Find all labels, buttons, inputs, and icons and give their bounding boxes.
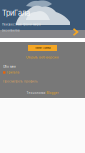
button[interactable]: Просмотреть профиль (3, 80, 38, 83)
button[interactable]: ТриГала (3, 71, 19, 74)
staticText: Обо мне (3, 65, 16, 68)
staticText: Технологии (26, 91, 45, 95)
button[interactable]: Следующая страница (72, 28, 79, 36)
staticText: Открыть веб-версию (26, 56, 59, 59)
staticText: Главная страница (34, 47, 50, 49)
staticText: Blogger (46, 91, 58, 95)
button[interactable]: Открыть веб-версию (26, 56, 59, 59)
button[interactable]: Blogger (46, 91, 58, 95)
staticText: ТриГала (6, 71, 19, 74)
staticText: Просмотреть профиль (3, 80, 38, 83)
staticText: Неизвестные грани мира (2, 23, 41, 26)
staticText: ТриГала (2, 9, 30, 17)
button[interactable]: Главная страница (28, 45, 57, 51)
staticText: Без ответов (2, 29, 20, 32)
